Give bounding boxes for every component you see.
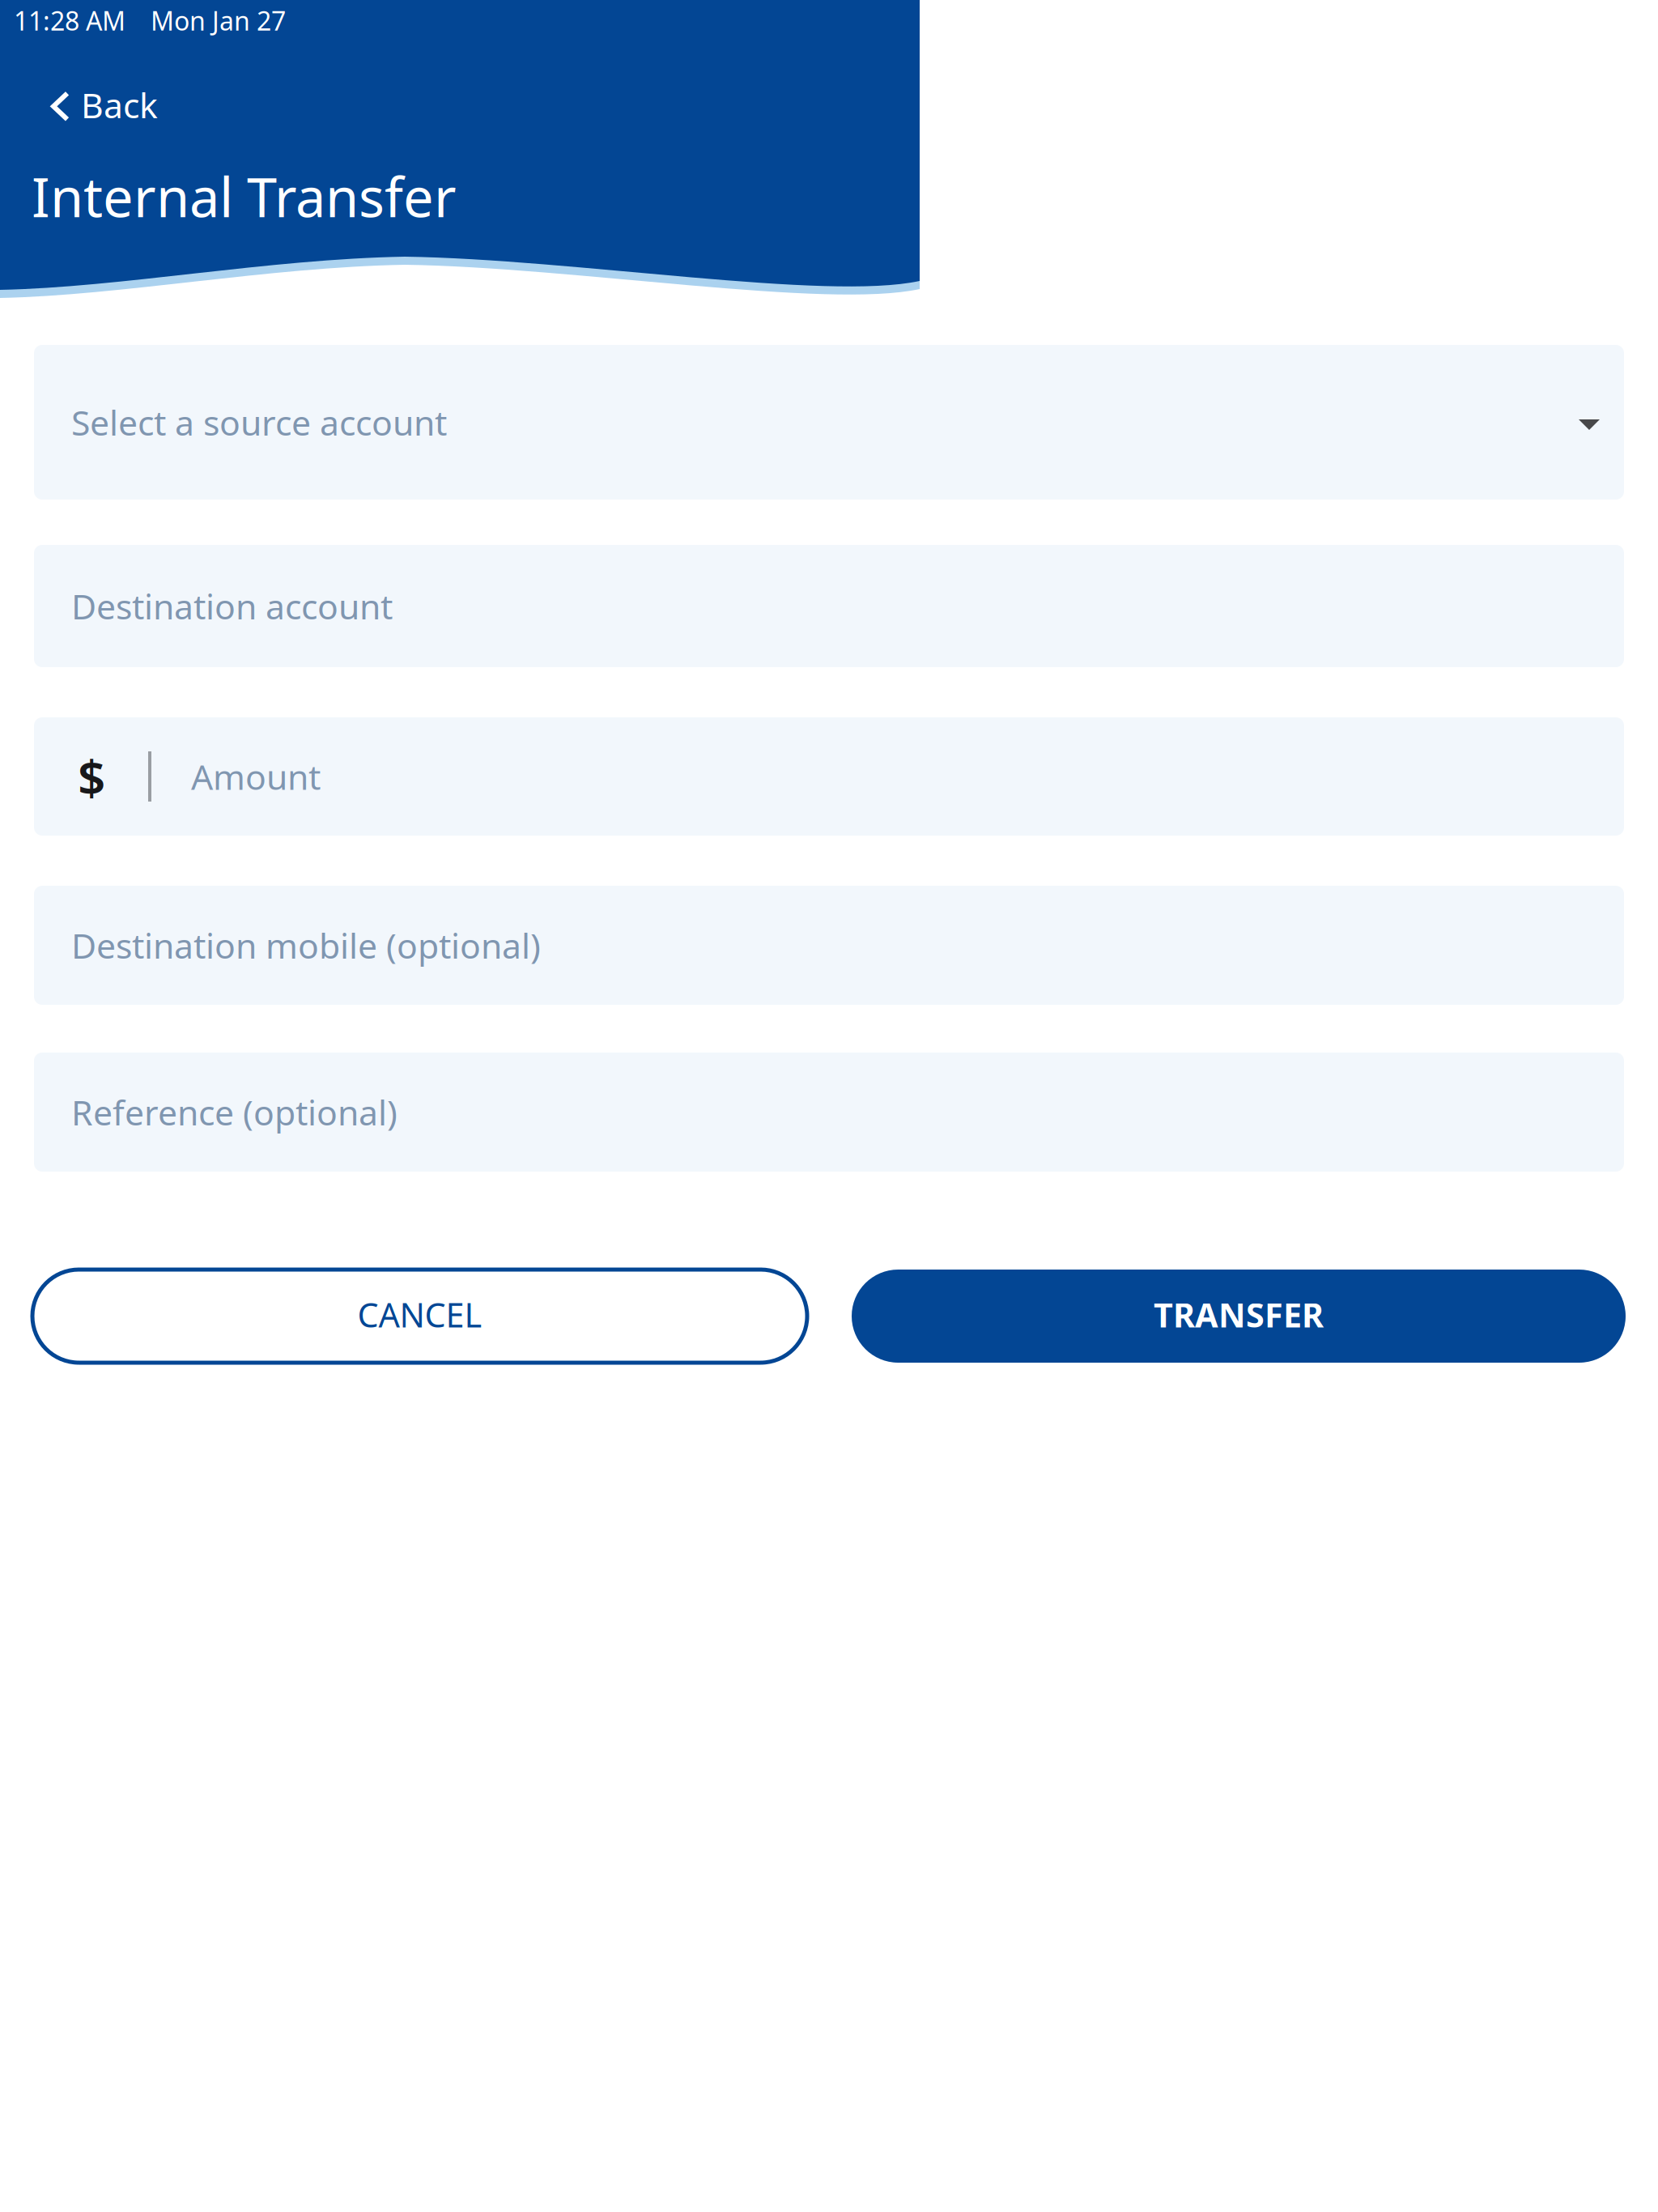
- button[interactable]: Select a source account: [34, 345, 1624, 500]
- staticText: 11:28 AM: [14, 3, 125, 38]
- staticText: Mon Jan 27: [151, 3, 286, 38]
- staticText: TRANSFER: [1154, 1292, 1324, 1337]
- button[interactable]: $: [34, 717, 1624, 836]
- button[interactable]: CANCEL: [32, 1270, 807, 1363]
- button[interactable]: Back: [31, 74, 177, 140]
- staticText: Select a source account: [71, 399, 447, 445]
- button[interactable]: Reference (optional): [34, 1053, 1624, 1172]
- button[interactable]: TRANSFER: [852, 1270, 1626, 1363]
- staticText: Back: [81, 82, 158, 128]
- staticText: Reference (optional): [71, 1089, 397, 1135]
- staticText: Destination mobile (optional): [71, 922, 541, 968]
- staticText: $: [78, 744, 105, 809]
- button[interactable]: Destination account: [34, 545, 1624, 667]
- staticText: Destination account: [71, 583, 393, 629]
- button[interactable]: Destination mobile (optional): [34, 886, 1624, 1005]
- staticText: Amount: [191, 754, 321, 799]
- staticText: CANCEL: [357, 1292, 482, 1337]
- staticText: Internal Transfer: [32, 160, 457, 232]
